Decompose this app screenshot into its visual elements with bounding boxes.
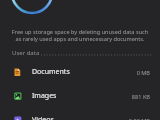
staticText: User data: [12, 49, 40, 57]
staticText: as rarely used apps and unnecessary docu…: [0, 35, 160, 43]
staticText: 0 MB: [108, 69, 150, 77]
button[interactable]: Videos: [0, 108, 160, 120]
staticText: Images: [32, 91, 57, 101]
staticText: 881 KB: [108, 93, 150, 101]
staticText: Videos: [32, 115, 54, 120]
staticText: 2.50 MB: [108, 117, 150, 120]
other: Documents: [14, 68, 22, 76]
button[interactable]: Images: [0, 84, 160, 108]
other: Images: [14, 92, 22, 100]
button[interactable]: Documents: [0, 60, 160, 84]
staticText: Free up storage space by deleting unused…: [0, 28, 160, 36]
staticText: Documents: [32, 67, 70, 77]
other: Videos: [14, 116, 22, 120]
